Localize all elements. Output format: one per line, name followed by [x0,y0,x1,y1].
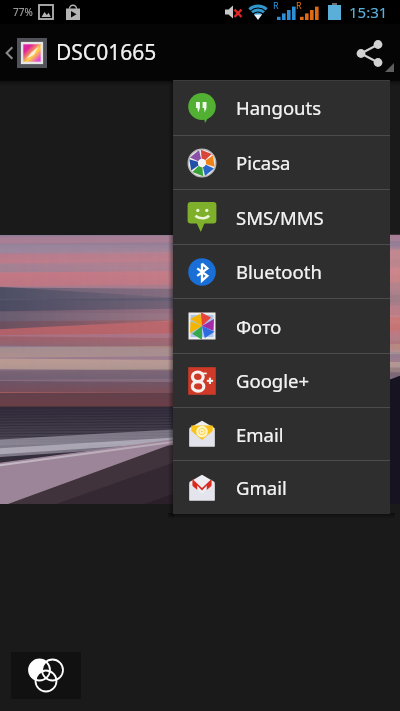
button[interactable]: Share [344,24,400,81]
staticText: Gmail [236,475,287,500]
button[interactable]: Gmail [173,461,390,514]
staticText: Picasa [236,150,291,175]
staticText: 77% [13,5,33,19]
staticText: 15:31 [349,2,388,22]
staticText: Фото [236,314,282,339]
staticText: R [296,0,302,11]
button[interactable]: SMS/MMS [173,190,390,244]
staticText: R [273,0,279,11]
button[interactable]: DSC01665 [0,24,248,81]
staticText: Hangouts [236,95,322,120]
button[interactable]: Hangouts [173,80,390,135]
button[interactable]: Google+ [173,354,390,407]
staticText: SMS/MMS [236,205,324,230]
staticText: Bluetooth [236,259,322,284]
staticText: Google+ [236,368,310,393]
button[interactable]: Edit [11,652,81,699]
button[interactable]: Picasa [173,136,390,189]
staticText: DSC01665 [56,38,157,67]
staticText: Email [236,422,284,447]
button[interactable]: Bluetooth [173,245,390,298]
button[interactable]: Email [173,408,390,460]
button[interactable]: Фото [173,299,390,353]
